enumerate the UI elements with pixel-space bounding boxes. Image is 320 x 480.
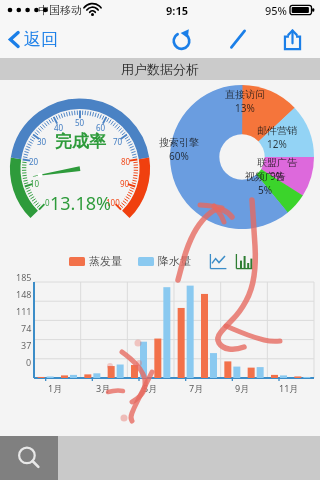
button[interactable]: Share — [270, 22, 314, 56]
button[interactable]: Refresh — [158, 22, 204, 56]
staticText: 13% — [235, 101, 255, 115]
staticText: 3月 — [96, 382, 111, 394]
staticText: 9:15 — [166, 3, 188, 18]
staticText: 90 — [120, 178, 130, 189]
staticText: 111 — [16, 305, 32, 317]
staticText: 蒸发量 — [89, 254, 122, 268]
staticText: 80 — [121, 156, 131, 167]
staticText: 用户数据分析 — [121, 61, 199, 77]
button[interactable]: Bar chart — [234, 251, 254, 271]
button[interactable]: Edit — [216, 22, 260, 56]
staticText: 1月 — [48, 382, 63, 394]
staticText: 降水量 — [158, 254, 191, 268]
staticText: 185 — [16, 271, 32, 283]
staticText: 60% — [169, 149, 189, 163]
button[interactable]: Line chart — [208, 251, 228, 271]
staticText: 74 — [21, 322, 32, 334]
staticText: 60 — [96, 122, 106, 133]
staticText: 邮件营销 — [257, 124, 297, 137]
staticText: 中国移动 — [38, 3, 82, 17]
staticText: 9% — [270, 169, 285, 183]
staticText: 5月 — [143, 382, 158, 394]
staticText: 37 — [21, 339, 32, 351]
staticText: 30 — [37, 136, 47, 147]
staticText: 20 — [29, 156, 39, 167]
button[interactable]: 返回 — [5, 24, 61, 55]
staticText: 11月 — [279, 382, 299, 394]
button[interactable]: Search — [0, 436, 58, 480]
staticText: 40 — [54, 122, 64, 133]
staticText: 13.18% — [50, 191, 111, 216]
staticText: 100 — [106, 197, 120, 208]
staticText: 95% — [265, 3, 287, 18]
staticText: 返回 — [24, 29, 58, 50]
button[interactable]: 蒸发量 — [66, 254, 125, 268]
staticText: 联盟广告 — [257, 156, 297, 169]
staticText: 5% — [258, 183, 273, 197]
staticText: 12% — [267, 137, 287, 151]
staticText: 9月 — [235, 382, 250, 394]
staticText: 7月 — [189, 382, 204, 394]
staticText: 视频广告 — [245, 170, 285, 183]
staticText: 完成率 — [55, 131, 106, 152]
staticText: 10 — [30, 178, 40, 189]
staticText: 直接访问 — [225, 88, 265, 101]
button[interactable]: 降水量 — [135, 254, 194, 268]
staticText: 148 — [16, 288, 32, 300]
staticText: 0 — [26, 356, 32, 368]
staticText: 0 — [45, 197, 50, 208]
staticText: 50 — [75, 117, 85, 128]
staticText: 搜索引擎 — [159, 136, 199, 149]
staticText: 70 — [113, 136, 123, 147]
